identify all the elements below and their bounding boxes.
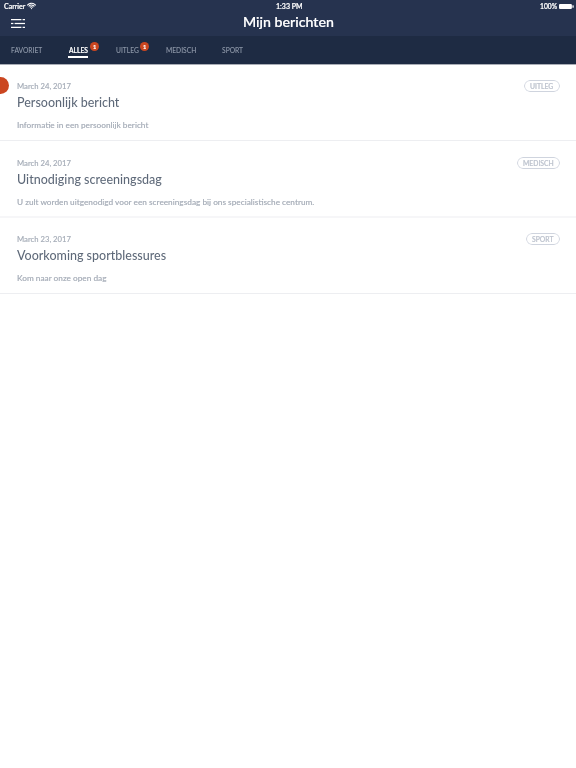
button[interactable] xyxy=(154,36,207,64)
button[interactable]: March 23, 2017 xyxy=(0,217,576,294)
staticText: March 23, 2017 xyxy=(17,234,71,243)
staticText: FAVORIET xyxy=(11,46,43,54)
staticText: Mijn berichten xyxy=(243,13,334,30)
staticText: 1 xyxy=(93,43,97,50)
staticText: UITLEG xyxy=(530,82,554,90)
staticText: 1 xyxy=(143,43,147,50)
button[interactable] xyxy=(57,36,109,64)
staticText: 1:33 PM xyxy=(276,2,303,10)
staticText: UITLEG xyxy=(116,46,139,54)
staticText: MEDISCH xyxy=(166,46,197,54)
staticText: Uitnodiging screeningsdag xyxy=(17,172,162,187)
button[interactable]: March 24, 2017 xyxy=(0,141,576,218)
staticText: ALLES xyxy=(69,46,88,54)
staticText: March 24, 2017 xyxy=(17,158,71,167)
staticText: Informatie in een persoonlijk bericht xyxy=(17,120,149,130)
staticText: Kom naar onze open dag xyxy=(17,273,107,283)
staticText: MEDISCH xyxy=(523,159,554,167)
button[interactable] xyxy=(210,36,255,64)
button[interactable] xyxy=(104,36,160,64)
staticText: Carrier xyxy=(4,2,26,10)
button[interactable] xyxy=(0,36,54,64)
staticText: SPORT xyxy=(532,235,554,243)
staticText: March 24, 2017 xyxy=(17,81,71,90)
staticText: 100% xyxy=(540,2,558,10)
staticText: U zult worden uitgenodigd voor een scree… xyxy=(17,197,315,207)
button[interactable]: March 24, 2017 xyxy=(0,64,576,141)
button[interactable]: Open navigation menu xyxy=(0,11,37,36)
staticText: SPORT xyxy=(222,46,244,54)
staticText: Voorkoming sportblessures xyxy=(17,248,167,263)
staticText: Persoonlijk bericht xyxy=(17,95,120,110)
